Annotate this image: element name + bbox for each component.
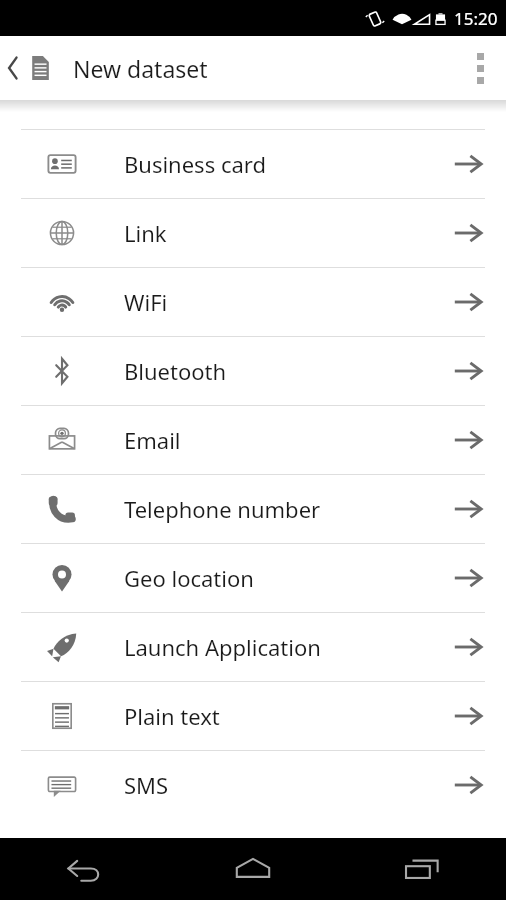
button[interactable]: Link <box>0 199 506 267</box>
staticText: Telephone number <box>124 494 321 524</box>
other: Navigate up <box>6 55 20 81</box>
button[interactable]: SMS <box>0 751 506 819</box>
button[interactable]: Bluetooth <box>0 337 506 405</box>
button[interactable]: Geo location <box>0 544 506 612</box>
button[interactable]: Launch Application <box>0 613 506 681</box>
button[interactable]: WiFi <box>0 268 506 336</box>
staticText: Geo location <box>124 563 254 593</box>
button[interactable]: Plain text <box>0 682 506 750</box>
button[interactable]: Home <box>168 838 337 900</box>
button[interactable]: Navigate up <box>0 36 220 100</box>
staticText: Bluetooth <box>124 356 227 386</box>
button[interactable]: Email <box>0 406 506 474</box>
button[interactable]: Business card <box>0 130 506 198</box>
staticText: Business card <box>124 149 266 179</box>
button[interactable]: More options <box>454 36 506 100</box>
staticText: Link <box>124 218 167 248</box>
button[interactable]: Back <box>0 838 168 900</box>
staticText: WiFi <box>124 287 168 317</box>
staticText: New dataset <box>73 53 208 84</box>
staticText: Email <box>124 425 181 455</box>
staticText: 15:20 <box>454 7 498 30</box>
staticText: Launch Application <box>124 632 321 662</box>
staticText: Plain text <box>124 701 220 731</box>
staticText: SMS <box>124 770 169 800</box>
button[interactable]: Recent apps <box>337 838 506 900</box>
button[interactable]: Telephone number <box>0 475 506 543</box>
